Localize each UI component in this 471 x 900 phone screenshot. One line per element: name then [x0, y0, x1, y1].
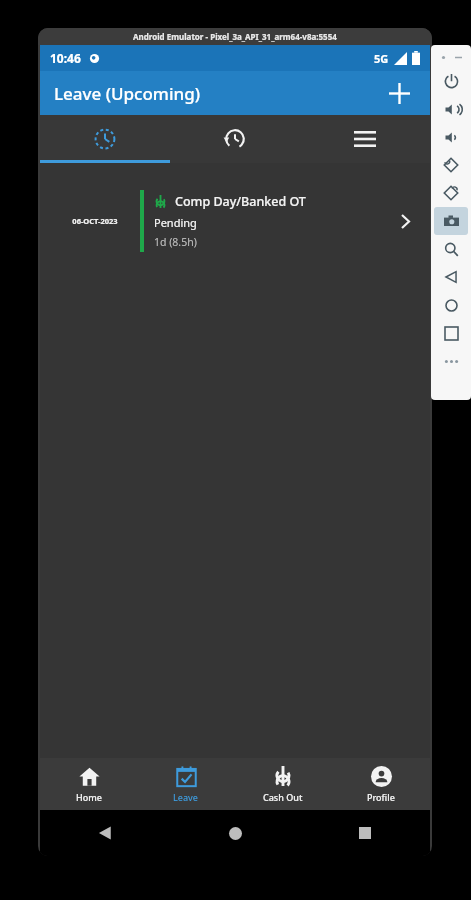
- button[interactable]: Leave: [137, 758, 234, 810]
- button[interactable]: Power: [434, 67, 468, 95]
- button[interactable]: Zoom: [434, 235, 468, 263]
- button[interactable]: Take screenshot: [434, 207, 468, 235]
- button[interactable]: Cash Out: [234, 758, 332, 810]
- button[interactable]: Add leave request: [380, 74, 418, 112]
- staticText: Comp Day/Banked OT: [175, 193, 306, 210]
- button[interactable]: Balances: [300, 115, 430, 163]
- button[interactable]: Back: [40, 810, 170, 856]
- staticText: 10:46: [50, 50, 81, 66]
- staticText: Android Emulator - Pixel_3a_API_31_arm64…: [133, 31, 337, 42]
- staticText: Home: [76, 791, 102, 803]
- staticText: 1d (8.5h): [154, 235, 197, 249]
- button[interactable]: Volume down: [434, 123, 468, 151]
- staticText: 5G: [374, 51, 389, 66]
- button[interactable]: Overview: [434, 319, 468, 347]
- button[interactable]: 06-OCT-2023: [40, 185, 430, 257]
- staticText: 06-OCT-2023: [72, 216, 118, 226]
- button[interactable]: Home: [170, 810, 300, 856]
- button[interactable]: Rotate right: [434, 179, 468, 207]
- button[interactable]: Volume up: [434, 95, 468, 123]
- button[interactable]: More: [434, 347, 468, 375]
- button[interactable]: History: [170, 115, 300, 163]
- button[interactable]: Home: [434, 291, 468, 319]
- button[interactable]: Rotate left: [434, 151, 468, 179]
- staticText: Cash Out: [263, 791, 303, 803]
- button[interactable]: Profile: [332, 758, 430, 810]
- staticText: Leave (Upcoming): [54, 82, 201, 105]
- button[interactable]: Back: [434, 263, 468, 291]
- button[interactable]: Home: [40, 758, 137, 810]
- staticText: Profile: [367, 791, 395, 803]
- button[interactable]: Upcoming: [40, 115, 170, 163]
- staticText: Pending: [154, 215, 197, 230]
- staticText: Leave: [173, 791, 199, 803]
- button[interactable]: Recent apps: [300, 810, 430, 856]
